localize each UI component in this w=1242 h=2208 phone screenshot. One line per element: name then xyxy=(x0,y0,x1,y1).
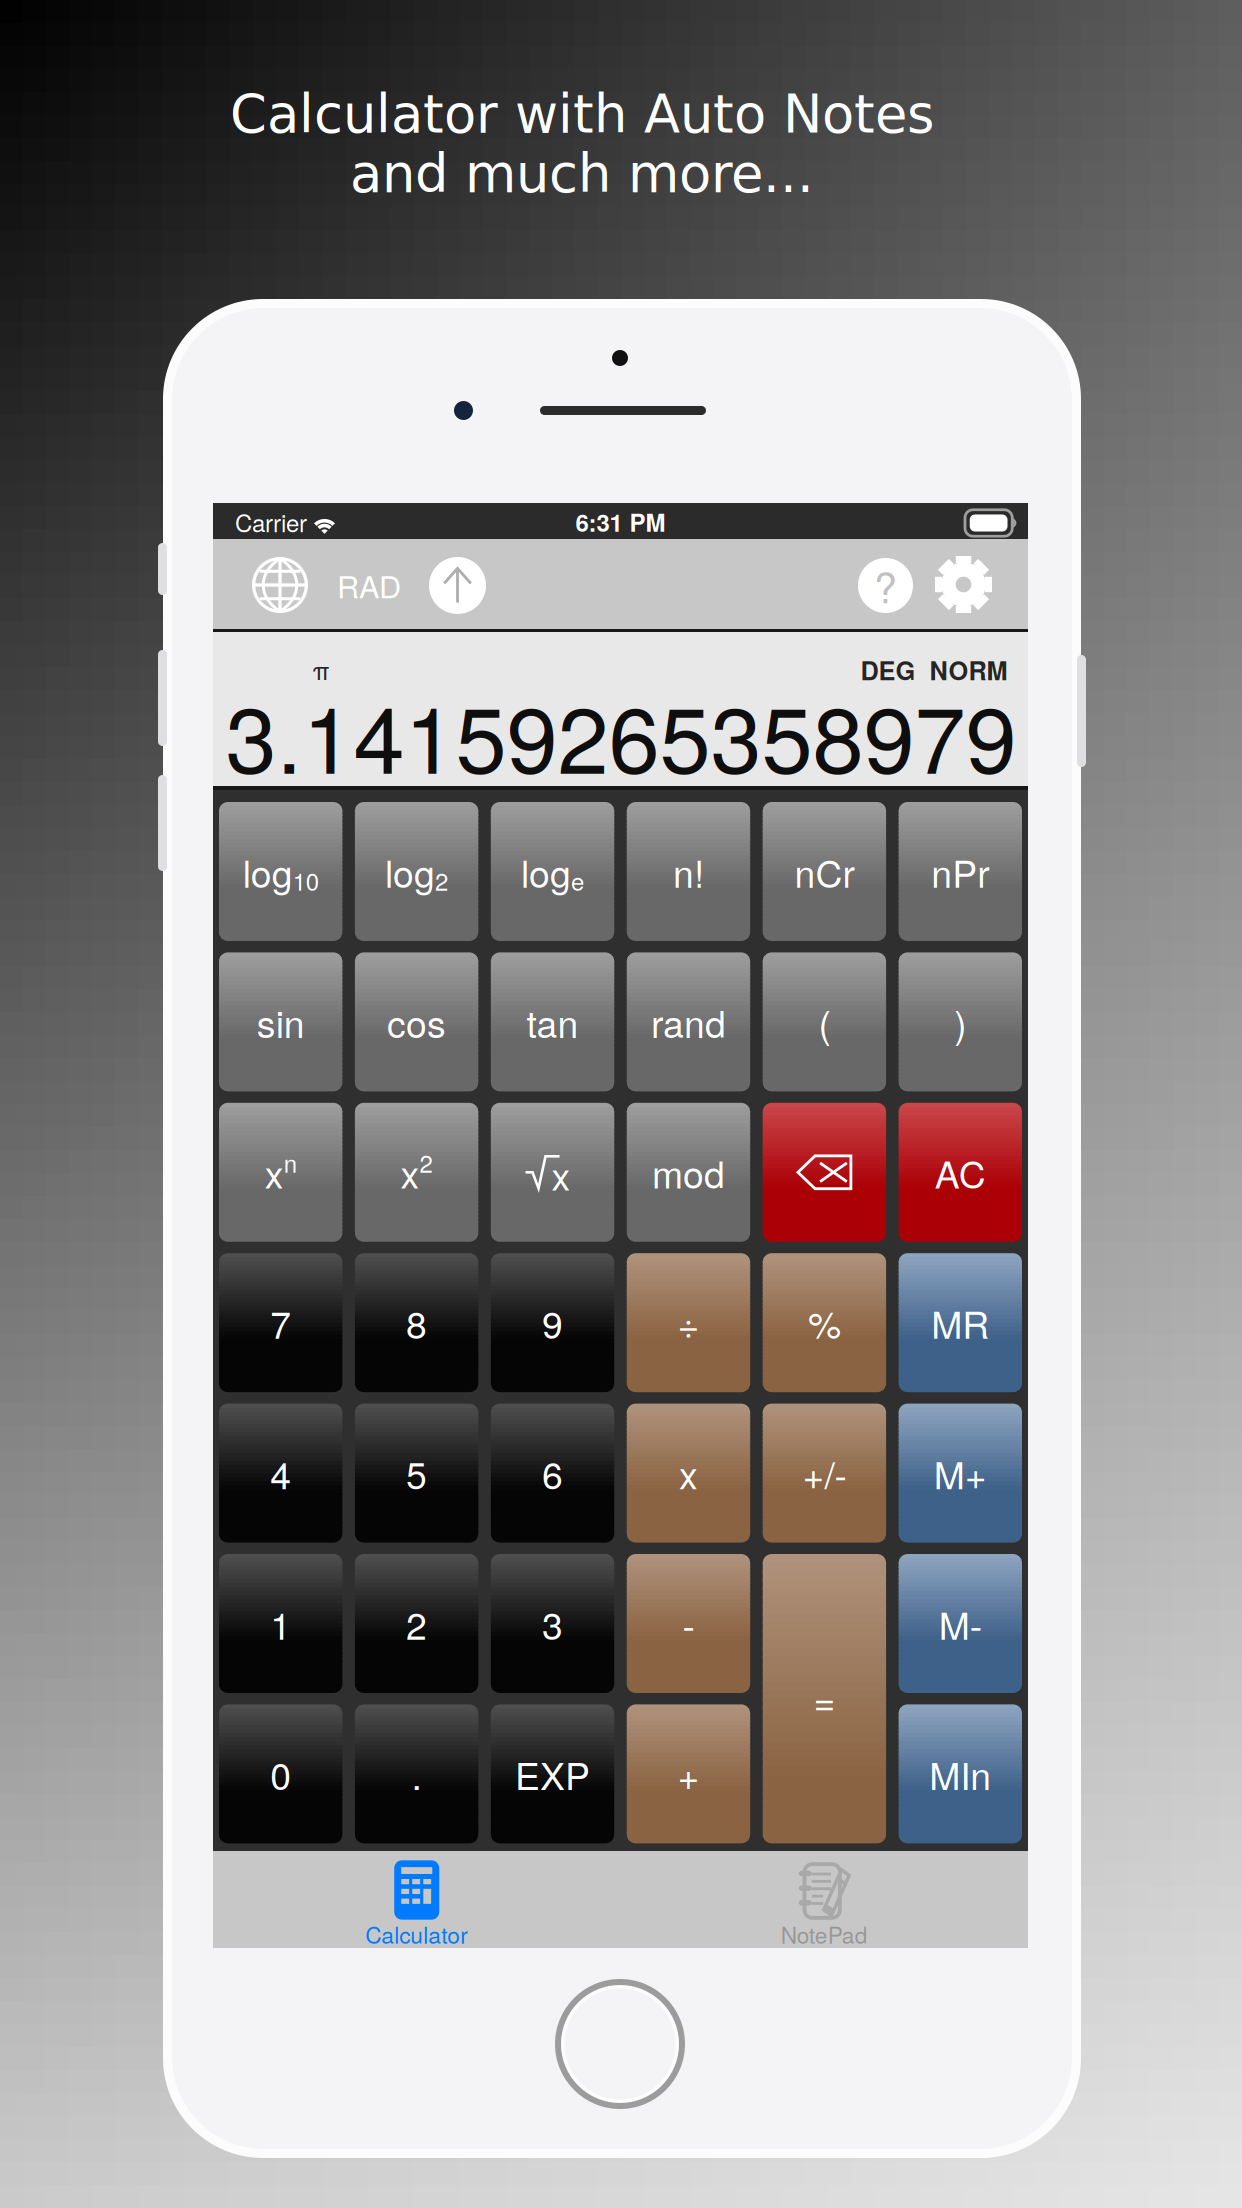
staticText: cos xyxy=(387,995,446,1049)
button[interactable]: MIn xyxy=(899,1704,1022,1843)
button[interactable]: Move up xyxy=(0,0,1242,2208)
staticText: M- xyxy=(939,1597,982,1650)
button[interactable]: n! xyxy=(627,802,750,941)
button[interactable]: rand xyxy=(627,952,750,1091)
staticText: MR xyxy=(931,1296,989,1349)
button[interactable] xyxy=(763,1103,886,1242)
staticText: x xyxy=(551,1148,570,1201)
staticText: e xyxy=(571,863,584,898)
button[interactable]: ( xyxy=(763,952,886,1091)
staticText: x xyxy=(401,1146,420,1199)
staticText: 2 xyxy=(406,1597,427,1650)
button[interactable]: 1 xyxy=(219,1554,342,1693)
button[interactable]: 2 xyxy=(355,1554,478,1693)
staticText: and much more... xyxy=(350,143,814,204)
button[interactable]: tan xyxy=(491,952,614,1091)
button[interactable]: +/- xyxy=(763,1404,886,1543)
button[interactable]: x xyxy=(491,1103,614,1242)
button[interactable]: sin xyxy=(219,952,342,1091)
button[interactable]: M- xyxy=(899,1554,1022,1693)
button[interactable]: nPr xyxy=(899,802,1022,941)
staticText: x xyxy=(679,1446,698,1500)
button[interactable]: EXP xyxy=(491,1704,614,1843)
staticText: nPr xyxy=(931,845,989,898)
staticText: 3.14159265358979 xyxy=(225,668,1016,800)
staticText: +/- xyxy=(802,1446,846,1500)
staticText: 3 xyxy=(542,1597,563,1650)
button[interactable]: Settings xyxy=(0,0,1242,2208)
button[interactable]: Calculator xyxy=(213,1851,620,1948)
staticText: M+ xyxy=(934,1446,987,1500)
staticText: RAD xyxy=(337,563,401,607)
staticText: NotePad xyxy=(781,1918,868,1950)
button[interactable]: RAD xyxy=(0,0,1242,2208)
staticText: tan xyxy=(526,995,578,1049)
button[interactable]: x xyxy=(627,1404,750,1543)
staticText: 2 xyxy=(420,1145,433,1179)
button[interactable]: 8 xyxy=(355,1253,478,1392)
button[interactable]: ÷ xyxy=(627,1253,750,1392)
staticText: ( xyxy=(818,995,830,1049)
button[interactable]: 4 xyxy=(219,1404,342,1543)
staticText: 9 xyxy=(542,1296,563,1349)
staticText: 2 xyxy=(435,863,448,898)
button[interactable]: Language xyxy=(0,0,1242,2208)
staticText: x xyxy=(265,1146,284,1199)
staticText: log xyxy=(243,845,293,898)
staticText: . xyxy=(412,1747,422,1801)
staticText: = xyxy=(813,1672,835,1725)
button[interactable]: x xyxy=(219,1103,342,1242)
staticText: ÷ xyxy=(677,1296,699,1349)
staticText: rand xyxy=(651,995,726,1049)
button[interactable]: ) xyxy=(899,952,1022,1091)
button[interactable]: + xyxy=(627,1704,750,1843)
button[interactable]: 0 xyxy=(219,1704,342,1843)
button[interactable]: 7 xyxy=(219,1253,342,1392)
staticText: 6:31 PM xyxy=(575,505,665,539)
button[interactable]: . xyxy=(355,1704,478,1843)
staticText: DEG NORM xyxy=(860,652,1007,688)
staticText: Calculator with Auto Notes xyxy=(230,84,934,145)
button[interactable]: Help xyxy=(0,0,1242,2208)
button[interactable]: 5 xyxy=(355,1404,478,1543)
button[interactable]: = xyxy=(763,1554,886,1843)
staticText: 0 xyxy=(270,1747,291,1801)
staticText: n xyxy=(284,1145,297,1179)
staticText: AC xyxy=(935,1146,986,1199)
staticText: + xyxy=(677,1747,699,1801)
staticText: 6 xyxy=(542,1446,563,1500)
staticText: 10 xyxy=(293,863,319,898)
button[interactable]: nCr xyxy=(763,802,886,941)
staticText: ) xyxy=(954,995,966,1049)
staticText: ? xyxy=(874,556,897,615)
button[interactable]: log xyxy=(219,802,342,941)
staticText: 7 xyxy=(270,1296,291,1349)
staticText: mod xyxy=(652,1146,725,1199)
button[interactable]: NotePad xyxy=(620,1851,1028,1948)
button[interactable]: mod xyxy=(627,1103,750,1242)
staticText: 4 xyxy=(270,1446,291,1500)
staticText: log xyxy=(521,845,571,898)
button[interactable]: x xyxy=(355,1103,478,1242)
button[interactable]: MR xyxy=(899,1253,1022,1392)
staticText: 5 xyxy=(406,1446,427,1500)
staticText: n! xyxy=(673,845,704,898)
staticText: EXP xyxy=(515,1747,590,1801)
staticText: Calculator xyxy=(365,1918,468,1950)
button[interactable]: 9 xyxy=(491,1253,614,1392)
button[interactable]: log xyxy=(355,802,478,941)
staticText: - xyxy=(682,1597,694,1650)
staticText: 1 xyxy=(270,1597,291,1650)
staticText: sin xyxy=(257,995,305,1049)
button[interactable]: AC xyxy=(899,1103,1022,1242)
staticText: π xyxy=(312,651,329,687)
button[interactable]: 3 xyxy=(491,1554,614,1693)
button[interactable]: log xyxy=(491,802,614,941)
button[interactable]: - xyxy=(627,1554,750,1693)
button[interactable]: cos xyxy=(355,952,478,1091)
staticText: % xyxy=(808,1296,841,1349)
button[interactable]: 6 xyxy=(491,1404,614,1543)
button[interactable]: M+ xyxy=(899,1404,1022,1543)
staticText: Carrier xyxy=(235,505,307,539)
button[interactable]: % xyxy=(763,1253,886,1392)
